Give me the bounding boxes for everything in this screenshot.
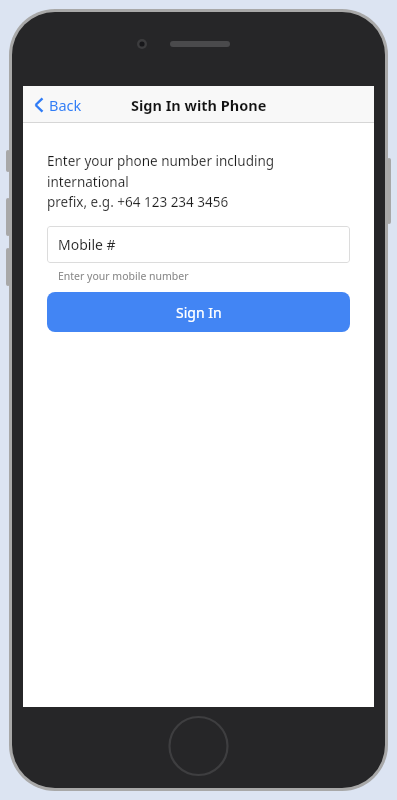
button[interactable]: Sign In bbox=[47, 292, 350, 332]
staticText: Enter your mobile number bbox=[58, 269, 189, 283]
button[interactable]: Mobile number input bbox=[47, 226, 350, 263]
staticText: Enter your phone number including intern… bbox=[47, 152, 350, 211]
staticText: Sign In bbox=[176, 303, 222, 322]
staticText: Mobile # bbox=[58, 235, 116, 254]
staticText: Back bbox=[49, 95, 82, 115]
staticText: Sign In with Phone bbox=[131, 95, 267, 115]
button[interactable]: Back bbox=[28, 90, 88, 120]
